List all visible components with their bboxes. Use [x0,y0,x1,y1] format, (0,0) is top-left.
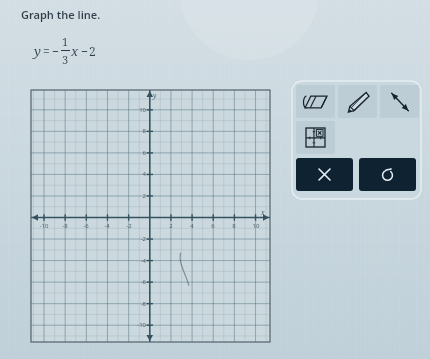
staticText: -8 [59,222,71,230]
staticText: -2 [123,222,135,230]
staticText: -4 [134,257,146,265]
staticText: -2 [134,235,146,243]
button[interactable]: Plot point [296,121,335,154]
staticText: x [71,42,79,60]
staticText: 8 [134,127,146,135]
staticText: 2 [89,43,96,59]
staticText: 2 [134,192,146,200]
staticText: x [261,208,265,217]
staticText: -6 [134,278,146,286]
staticText: 3 [62,52,69,67]
staticText: 6 [207,222,219,230]
staticText: y [153,91,157,100]
button[interactable]: Eraser [296,85,335,118]
staticText: -4 [101,222,113,230]
staticText: -6 [80,222,92,230]
staticText: 2 [165,222,177,230]
staticText: 4 [186,222,198,230]
button[interactable]: Clear [296,158,353,191]
staticText: -10 [38,222,50,230]
staticText: − [52,43,59,59]
button[interactable]: Pencil [338,85,377,118]
staticText: Graph the line. [21,7,101,22]
staticText: 6 [134,149,146,157]
staticText: 4 [134,170,146,178]
button[interactable]: Draw line [380,85,419,118]
staticText: -8 [134,300,146,308]
button[interactable]: -10 [31,90,270,342]
staticText: y [34,42,41,60]
staticText: 10 [250,222,262,230]
staticText: − [81,43,88,59]
button[interactable]: Undo [359,158,416,191]
staticText: = [43,43,50,59]
staticText: 1 [62,34,69,49]
staticText: -10 [134,321,146,329]
staticText: 10 [134,106,146,114]
staticText: 8 [228,222,240,230]
